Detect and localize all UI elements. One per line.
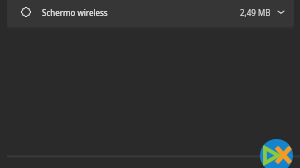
staticText: Schermo wireless [42, 7, 108, 18]
button[interactable]: Schermo wireless [7, 0, 294, 27]
button[interactable]: MX Player [260, 139, 293, 168]
staticText: 2,49 MB [240, 7, 271, 18]
button[interactable]: Expand [274, 7, 288, 21]
